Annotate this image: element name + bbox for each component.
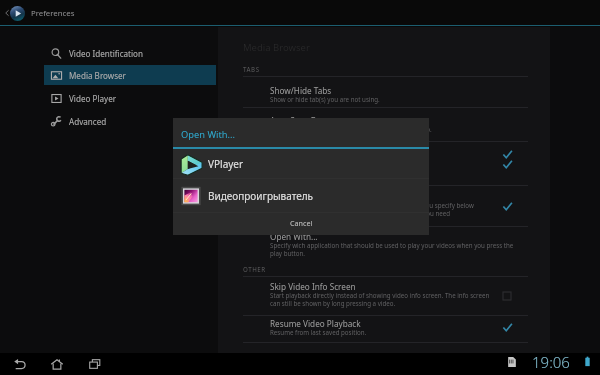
staticText: Hide Folders [270,147,319,158]
staticText: Video Identification [69,48,143,59]
staticText: Video Folders [270,191,323,202]
button[interactable] [243,76,528,108]
staticText: Open With... [181,128,236,141]
button[interactable]: Видеопроигрыватель [173,179,429,212]
staticText: Auto Start Browser [270,115,343,126]
staticText: Resume from last saved position. [270,328,367,336]
button[interactable]: VPlayer [173,149,429,178]
staticText: Skip Video Info Screen [270,281,356,292]
staticText: Select folders which contain your videos… [270,201,474,209]
button[interactable]: Back [0,6,14,20]
button[interactable] [243,227,528,262]
staticText: will be shown. Scanning is done recursiv… [270,209,451,217]
button[interactable]: Cancel [173,213,429,235]
staticText: Cancel [290,218,313,228]
button[interactable] [243,276,528,316]
button[interactable]: Advanced [44,111,216,131]
staticText: OTHER [243,265,266,273]
staticText: Resume Video Playback [270,318,361,329]
staticText: TABS [243,65,260,73]
button[interactable] [243,186,528,227]
button[interactable]: Media Browser [44,65,216,85]
staticText: Media Browser [69,70,126,81]
staticText: Видеопроигрыватель [208,189,314,203]
staticText: Show/Hide Tabs [270,85,332,96]
button[interactable]: Video Identification [44,43,216,63]
button[interactable]: Recent apps [88,357,102,371]
staticText: Open With... [270,231,318,242]
staticText: Advanced [69,116,107,127]
staticText: Media Browser [243,41,310,54]
button[interactable] [243,316,528,343]
staticText: Show or hide tab(s) you are not using. [270,95,380,103]
button[interactable]: Back [13,357,27,371]
button[interactable]: Home [50,357,64,371]
staticText: Video Player [69,93,117,104]
staticText: 19:06 [532,352,570,372]
button[interactable]: Video Player [44,88,216,108]
staticText: Preferences [31,8,75,19]
button[interactable] [243,108,528,142]
staticText: Specify wich application that should be … [270,241,514,249]
staticText: can still be shown by long pressing a vi… [270,299,396,307]
staticText: Start playback directly instead of showi… [270,291,490,299]
button[interactable] [243,142,528,186]
staticText: play button. [270,249,305,257]
staticText: VPlayer [208,157,244,171]
